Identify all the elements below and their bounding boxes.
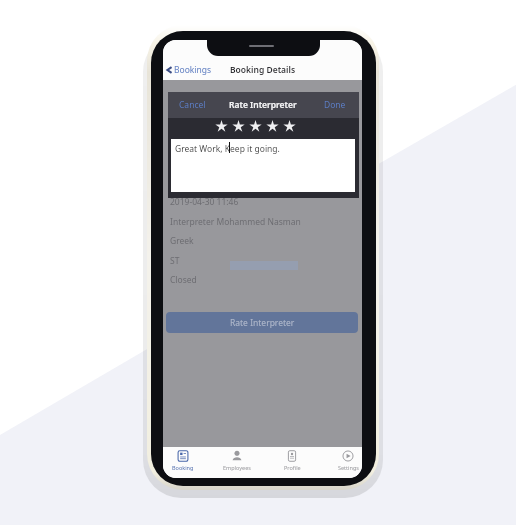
staticText: Greek bbox=[170, 235, 194, 247]
staticText: Booking bbox=[172, 464, 194, 471]
button[interactable]: Great Work, Keep it going. bbox=[171, 139, 355, 192]
button[interactable]: Star 4 bbox=[266, 120, 279, 133]
staticText: 2019-04-30 11:46 bbox=[170, 196, 239, 208]
button[interactable]: Star 3 bbox=[249, 120, 262, 133]
button[interactable]: Cancel bbox=[174, 94, 211, 116]
staticText: Great Work, Keep it going. bbox=[175, 143, 280, 155]
staticText: Booking Details bbox=[230, 64, 296, 76]
button[interactable]: Booking bbox=[163, 447, 204, 478]
button[interactable]: Rate Interpreter bbox=[166, 312, 358, 333]
button[interactable]: Employees bbox=[216, 447, 258, 478]
staticText: ST bbox=[170, 255, 180, 267]
staticText: Rate Interpreter bbox=[230, 317, 295, 329]
button[interactable]: Profile bbox=[271, 447, 313, 478]
staticText: Rate Interpreter bbox=[229, 99, 297, 111]
button[interactable]: Done bbox=[319, 94, 351, 116]
button[interactable]: Star 5 bbox=[283, 120, 296, 133]
button[interactable]: Star 2 bbox=[232, 120, 245, 133]
staticText: Done bbox=[324, 99, 346, 111]
button[interactable]: Settings bbox=[327, 447, 362, 478]
button[interactable]: Bookings bbox=[165, 64, 212, 76]
button[interactable]: Star 1 bbox=[215, 120, 228, 133]
staticText: Settings bbox=[338, 464, 359, 471]
staticText: Bookings bbox=[174, 64, 212, 76]
staticText: Profile bbox=[284, 464, 301, 471]
staticText: Interpreter Mohammed Nasman bbox=[170, 216, 301, 228]
staticText: Employees bbox=[223, 464, 251, 471]
staticText: Cancel bbox=[179, 99, 206, 111]
staticText: Closed bbox=[170, 274, 197, 286]
